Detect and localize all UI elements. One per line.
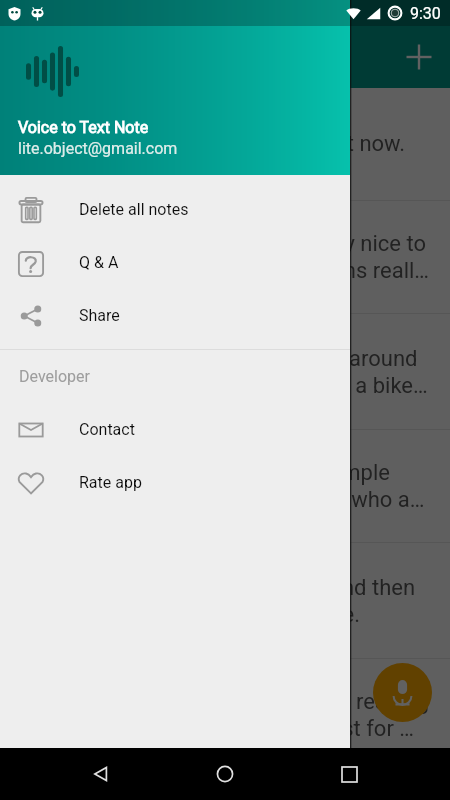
button[interactable]: Record voice note [373,663,432,722]
staticText: Rate app [79,473,142,492]
staticText: lite.object@gmail.com [18,139,178,158]
staticText: Keep these notes short enough so reading… [17,689,433,741]
staticText: Voice to Text Note [72,45,243,70]
button[interactable]: Home [202,751,248,797]
staticText: Delete all notes [79,200,189,219]
button[interactable]: Recents [326,751,372,797]
staticText: Q & A [79,253,119,272]
button[interactable]: Remember to say something really nice to… [0,201,450,314]
button[interactable]: Rate app [0,456,350,509]
staticText: Voice to Text Note [18,118,149,137]
staticText: Voice notes can be handy to have around … [17,346,433,398]
button[interactable]: Back [78,751,124,797]
button[interactable]: Keep these notes short enough so reading… [0,659,450,772]
staticText: Share [79,306,120,325]
staticText: This morning I wanted to find a simple w… [17,460,433,512]
staticText: Contact [79,420,135,439]
staticText: 9:30 [410,4,441,23]
button[interactable]: Take a long slow deep breath in and then… [0,543,450,659]
button[interactable]: Voice notes can be handy to have around … [0,314,450,430]
staticText: Remember to say something really nice to… [17,231,433,283]
button[interactable]: This is my first note I recorded just no… [0,88,450,201]
button[interactable]: Contact [0,403,350,456]
button[interactable]: Add note [394,32,444,82]
button[interactable]: Q & A [0,236,350,289]
staticText: This is my first note I recorded just no… [17,131,406,157]
button[interactable]: This morning I wanted to find a simple w… [0,430,450,543]
staticText: Developer [19,367,90,386]
staticText: Take a long slow deep breath in and then… [17,575,433,627]
button[interactable]: Share [0,289,350,342]
button[interactable]: Delete all notes [0,183,350,236]
